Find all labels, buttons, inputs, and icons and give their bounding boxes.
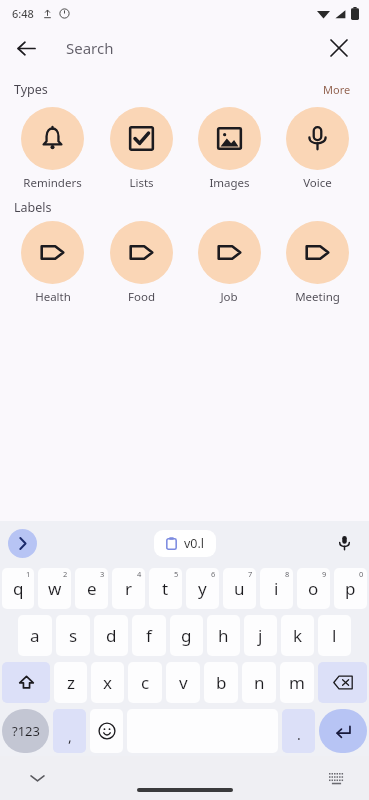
staticText: Voice — [303, 175, 332, 191]
staticText: k — [293, 624, 303, 647]
button[interactable]: d — [94, 615, 128, 656]
button[interactable]: z — [54, 662, 87, 703]
button[interactable]: g — [170, 615, 203, 656]
staticText: 8 — [285, 569, 290, 579]
button[interactable]: b — [204, 662, 238, 703]
button[interactable]: n — [242, 662, 276, 703]
staticText: Lists — [129, 175, 154, 191]
staticText: v — [179, 671, 188, 694]
staticText: o — [308, 577, 319, 600]
staticText: . — [297, 725, 301, 744]
button[interactable]: u — [223, 568, 256, 609]
button[interactable]: r — [112, 568, 145, 609]
staticText: Types — [14, 81, 48, 98]
button[interactable]: Switch keyboard — [321, 763, 351, 793]
staticText: More — [323, 82, 351, 97]
staticText: l — [332, 624, 337, 647]
button[interactable]: i — [260, 568, 293, 609]
button[interactable]: f — [132, 615, 166, 656]
staticText: 9 — [322, 569, 327, 579]
staticText: i — [274, 577, 279, 600]
button[interactable]: . — [282, 709, 315, 753]
button[interactable]: v0.l — [154, 530, 216, 557]
staticText: Food — [128, 289, 155, 305]
button[interactable]: t — [149, 568, 182, 609]
button[interactable]: Emoji — [90, 709, 123, 753]
button[interactable]: More — [319, 80, 355, 99]
staticText: x — [103, 671, 112, 694]
staticText: Search — [66, 38, 114, 58]
staticText: 0 — [359, 569, 364, 579]
staticText: a — [30, 624, 40, 647]
button[interactable]: e — [75, 568, 108, 609]
button[interactable]: p — [334, 568, 367, 609]
staticText: 6:48 — [12, 6, 34, 21]
staticText: q — [13, 577, 24, 600]
button[interactable]: Lists — [97, 105, 185, 193]
staticText: h — [218, 624, 229, 647]
staticText: 6 — [211, 569, 216, 579]
staticText: c — [141, 671, 150, 694]
button[interactable]: o — [297, 568, 330, 609]
button[interactable]: Close — [319, 28, 359, 68]
button[interactable]: q — [2, 568, 34, 609]
button[interactable]: Reminders — [8, 105, 97, 193]
button[interactable]: , — [53, 709, 86, 753]
button[interactable]: h — [207, 615, 240, 656]
button[interactable]: l — [318, 615, 351, 656]
button[interactable]: Enter — [319, 709, 367, 753]
button[interactable]: c — [128, 662, 162, 703]
button[interactable]: m — [280, 662, 314, 703]
staticText: Job — [220, 289, 238, 305]
button[interactable]: Meeting — [273, 219, 361, 307]
staticText: s — [69, 624, 78, 647]
button[interactable]: ?123 — [2, 709, 49, 753]
staticText: n — [254, 671, 265, 694]
button[interactable]: Voice — [273, 105, 361, 193]
staticText: d — [106, 624, 117, 647]
staticText: m — [289, 671, 305, 694]
staticText: 2 — [63, 569, 68, 579]
staticText: Images — [209, 175, 250, 191]
button[interactable]: Images — [185, 105, 273, 193]
staticText: ?123 — [12, 722, 40, 740]
button[interactable]: Back — [6, 28, 46, 68]
staticText: 7 — [248, 569, 253, 579]
staticText: e — [87, 577, 97, 600]
staticText: w — [48, 577, 62, 600]
button[interactable]: Job — [185, 219, 273, 307]
button[interactable]: Expand toolbar — [8, 529, 37, 558]
staticText: 4 — [137, 569, 142, 579]
staticText: u — [234, 577, 245, 600]
staticText: r — [125, 577, 133, 600]
button[interactable]: s — [56, 615, 90, 656]
staticText: 1 — [26, 569, 31, 579]
staticText: g — [181, 624, 192, 647]
staticText: y — [198, 577, 207, 600]
button[interactable]: Shift — [2, 662, 50, 703]
staticText: b — [216, 671, 227, 694]
button[interactable]: w — [38, 568, 71, 609]
button[interactable]: v — [166, 662, 200, 703]
button[interactable]: k — [281, 615, 314, 656]
staticText: p — [345, 577, 356, 600]
staticText: Labels — [14, 199, 52, 216]
staticText: v0.l — [184, 535, 205, 552]
staticText: Meeting — [295, 289, 340, 305]
button[interactable]: Backspace — [318, 662, 367, 703]
button[interactable]: j — [244, 615, 277, 656]
button[interactable]: Health — [8, 219, 97, 307]
staticText: Reminders — [23, 175, 82, 191]
button[interactable]: a — [18, 615, 52, 656]
button[interactable]: Voice input — [329, 528, 359, 558]
button[interactable]: x — [91, 662, 124, 703]
staticText: 5 — [174, 569, 179, 579]
staticText: f — [146, 624, 152, 647]
button[interactable]: Food — [97, 219, 185, 307]
staticText: , — [68, 727, 72, 746]
button[interactable]: y — [186, 568, 219, 609]
staticText: z — [67, 671, 75, 694]
button[interactable]: Hide keyboard — [22, 763, 52, 793]
staticText: j — [258, 624, 263, 647]
